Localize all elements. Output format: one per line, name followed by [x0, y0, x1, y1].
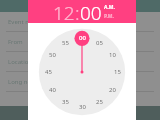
staticText: Event name [8, 18, 42, 26]
button[interactable]: 55 [60, 39, 70, 46]
button[interactable]: 35 [60, 98, 70, 105]
staticText: A.M. [104, 4, 115, 11]
button[interactable]: 12 [53, 0, 75, 23]
button[interactable]: P.M. [104, 13, 114, 20]
button[interactable]: 00 [77, 34, 87, 41]
staticText: 50 [49, 51, 56, 58]
button[interactable]: A.M. [104, 4, 115, 11]
staticText: 05 [96, 39, 103, 46]
button[interactable]: 20 [107, 86, 117, 93]
staticText: 35 [62, 98, 69, 105]
staticText: 10 [109, 51, 116, 58]
button[interactable]: 15 [112, 68, 122, 75]
button[interactable]: Location [0, 52, 160, 71]
staticText: 00 [79, 34, 86, 41]
staticText: 15 [114, 68, 121, 75]
staticText: 30 [79, 103, 86, 110]
button[interactable]: From [0, 32, 160, 51]
button[interactable]: 00 [80, 0, 102, 23]
staticText: 40 [49, 86, 56, 93]
staticText: 20 [109, 86, 116, 93]
button[interactable]: 50 [47, 51, 57, 58]
button[interactable]: Long note [0, 72, 160, 91]
staticText: 00 [80, 0, 102, 23]
staticText: From [8, 38, 23, 46]
staticText: 55 [62, 39, 69, 46]
staticText: 12 [53, 0, 75, 23]
staticText: 45 [45, 68, 52, 75]
button[interactable]: 05 [94, 39, 104, 46]
button[interactable]: Minute clock dial [28, 23, 136, 120]
button[interactable]: 10 [107, 51, 117, 58]
staticText: P.M. [104, 13, 114, 20]
button[interactable]: 40 [47, 86, 57, 93]
button[interactable]: Event name [0, 12, 160, 31]
staticText: 25 [96, 98, 103, 105]
button[interactable]: 30 [77, 103, 87, 110]
button[interactable]: 45 [43, 68, 53, 75]
staticText: Long note [8, 78, 37, 86]
button[interactable]: 25 [94, 98, 104, 105]
staticText: : [75, 0, 80, 23]
staticText: Location [8, 58, 33, 66]
